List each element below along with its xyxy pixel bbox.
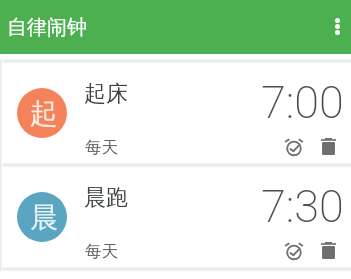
button[interactable]: Delete alarm (316, 239, 340, 263)
staticText: 自律闹钟 (7, 15, 87, 40)
staticText: 每天 (85, 137, 118, 158)
button[interactable]: 晨 (2, 167, 351, 267)
button[interactable]: Toggle alarm (280, 239, 304, 263)
button[interactable]: More options (322, 0, 351, 54)
staticText: 每天 (85, 241, 118, 262)
button[interactable]: Toggle alarm (280, 135, 304, 159)
staticText: 晨 (30, 200, 58, 235)
button[interactable]: Delete alarm (316, 135, 340, 159)
staticText: 起床 (84, 80, 128, 108)
staticText: 7:30 (261, 180, 344, 233)
staticText: 晨跑 (84, 184, 128, 212)
staticText: 起 (30, 96, 58, 131)
button[interactable]: 起 (2, 63, 351, 163)
staticText: 7:00 (261, 76, 344, 129)
